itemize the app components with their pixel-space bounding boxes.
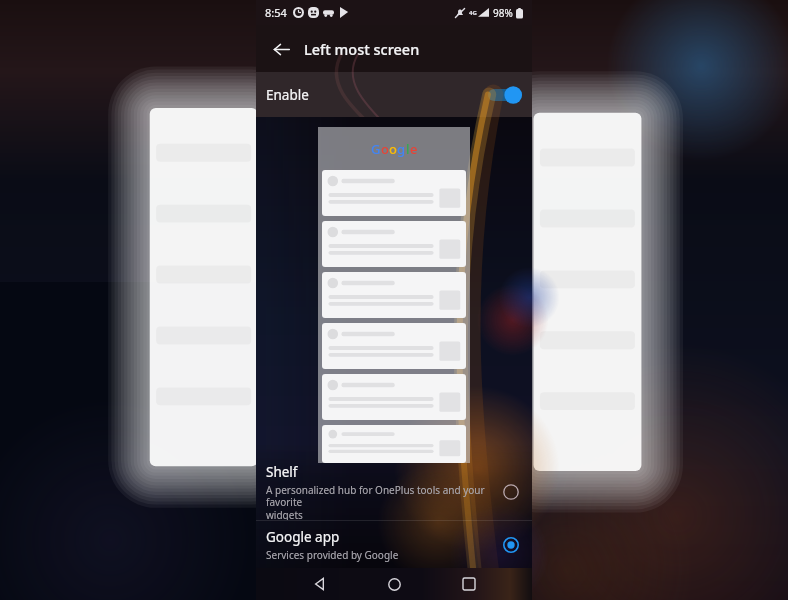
button[interactable]: Enable	[256, 72, 532, 117]
staticText: Shelf	[266, 463, 298, 481]
staticText: G	[371, 140, 381, 158]
staticText: o	[389, 140, 397, 158]
button[interactable]: G	[318, 127, 470, 463]
staticText: e	[410, 140, 418, 158]
staticText: Google app	[266, 528, 340, 546]
staticText: o	[381, 140, 389, 158]
button[interactable]: Recent apps	[454, 569, 484, 599]
staticText: 98%	[493, 6, 513, 20]
button[interactable]: Shelf	[256, 463, 532, 520]
staticText: g	[397, 140, 406, 158]
staticText: Left most screen	[304, 39, 420, 59]
button[interactable]	[500, 481, 522, 503]
button[interactable]	[500, 534, 522, 556]
button[interactable]: Home	[379, 569, 409, 599]
staticText: l	[406, 140, 410, 158]
button[interactable]: Google app	[256, 521, 532, 568]
staticText: Services provided by Google	[266, 548, 399, 562]
staticText: Enable	[266, 86, 309, 104]
staticText: 8:54	[265, 5, 287, 20]
button[interactable]: Back	[304, 569, 334, 599]
staticText: 4G	[469, 9, 477, 17]
button[interactable]: Back	[264, 32, 298, 66]
staticText: A personalized hub for OnePlus tools and…	[266, 483, 492, 520]
